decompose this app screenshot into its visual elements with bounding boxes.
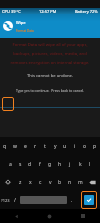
button[interactable]: o — [80, 137, 90, 155]
staticText: f — [39, 161, 41, 168]
button[interactable]: / — [10, 191, 20, 209]
staticText: Battery 72% — [75, 9, 98, 14]
staticText: r — [34, 143, 37, 150]
staticText: Format Data — [16, 29, 34, 33]
button[interactable]: h — [55, 155, 65, 173]
staticText: o — [83, 143, 87, 150]
staticText: m — [78, 179, 83, 186]
staticText: / — [14, 197, 16, 204]
button[interactable]: w — [10, 137, 20, 155]
button[interactable]: x — [25, 173, 35, 191]
staticText: v — [49, 179, 52, 186]
button[interactable]: Enter — [84, 195, 94, 205]
staticText: h — [58, 161, 62, 168]
staticText: z — [19, 179, 22, 186]
staticText: x — [29, 179, 32, 186]
staticText: Type yes to continue. Press back to canc… — [0, 88, 100, 93]
staticText: w — [13, 143, 17, 150]
button[interactable]: r — [30, 137, 40, 155]
button[interactable]: n — [65, 173, 75, 191]
button[interactable]: . — [67, 191, 77, 209]
button[interactable]: k — [75, 155, 85, 173]
button[interactable]: d — [25, 155, 35, 173]
staticText: l — [89, 161, 91, 168]
staticText: . — [71, 197, 73, 204]
button[interactable]: t — [40, 137, 50, 155]
staticText: p — [93, 143, 97, 150]
staticText: b — [58, 179, 62, 186]
button[interactable]: Recent apps — [66, 209, 100, 223]
button[interactable]: z — [15, 173, 25, 191]
staticText: d — [28, 161, 32, 168]
staticText: n — [68, 179, 72, 186]
button[interactable]: Backspace — [85, 173, 100, 191]
button[interactable]: p — [90, 137, 100, 155]
staticText: g — [48, 161, 52, 168]
button[interactable]: ?123 — [0, 191, 10, 209]
staticText: Format Data will wipe all of your apps, … — [3, 42, 97, 65]
button[interactable]: e — [20, 137, 30, 155]
staticText: CPU 39 °C — [2, 9, 21, 14]
button[interactable]: y — [50, 137, 60, 155]
button[interactable]: m — [75, 173, 85, 191]
staticText: y — [54, 143, 57, 150]
staticText: This cannot be undone. — [0, 73, 100, 79]
staticText: s — [19, 161, 22, 168]
button[interactable]: Home — [33, 209, 66, 223]
staticText: q — [3, 143, 7, 150]
staticText: t — [44, 143, 46, 150]
button[interactable]: c — [35, 173, 45, 191]
button[interactable]: s — [15, 155, 25, 173]
button[interactable]: i — [70, 137, 80, 155]
staticText: 12:57 PM — [39, 9, 57, 14]
staticText: u — [63, 143, 67, 150]
button[interactable]: j — [65, 155, 75, 173]
button[interactable]: u — [60, 137, 70, 155]
button[interactable]: Back — [0, 209, 33, 223]
button[interactable]: Shift — [0, 173, 15, 191]
button[interactable]: l — [85, 155, 95, 173]
button[interactable]: b — [55, 173, 65, 191]
button[interactable]: v — [45, 173, 55, 191]
button[interactable]: f — [35, 155, 45, 173]
button[interactable]: Text input — [2, 97, 14, 111]
staticText: c — [39, 179, 42, 186]
button[interactable]: g — [45, 155, 55, 173]
staticText: e — [24, 143, 27, 150]
staticText: a — [9, 161, 12, 168]
staticText: k — [79, 161, 82, 168]
staticText: ?123 — [1, 198, 10, 203]
button[interactable]: a — [5, 155, 15, 173]
staticText: j — [69, 161, 71, 168]
staticText: i — [74, 143, 76, 150]
staticText: Wipe — [16, 20, 26, 25]
button[interactable]: q — [0, 137, 10, 155]
